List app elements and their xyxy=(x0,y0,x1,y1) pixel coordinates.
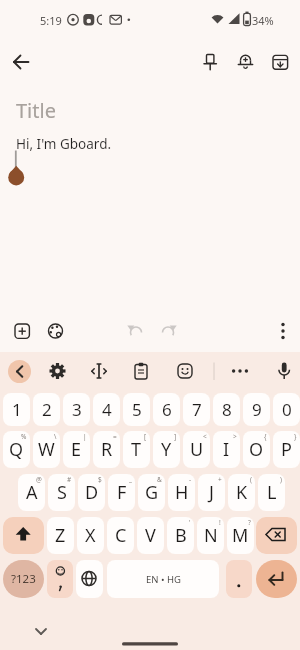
staticText: 6 xyxy=(162,398,172,421)
staticText: C xyxy=(115,523,127,548)
button[interactable]: L xyxy=(258,474,285,511)
button[interactable] xyxy=(226,357,254,385)
button[interactable]: 9 xyxy=(243,393,270,426)
staticText: [ xyxy=(144,432,147,441)
staticText: J xyxy=(209,480,214,505)
button[interactable] xyxy=(29,620,53,642)
button[interactable]: W xyxy=(33,431,60,468)
staticText: Z xyxy=(55,523,66,548)
button[interactable] xyxy=(8,48,36,76)
staticText: | xyxy=(83,432,87,441)
button[interactable]: X xyxy=(77,517,104,554)
button[interactable]: K xyxy=(228,474,255,511)
button[interactable] xyxy=(268,48,294,76)
button[interactable] xyxy=(154,317,182,345)
button[interactable] xyxy=(8,360,31,383)
button[interactable]: 7 xyxy=(183,393,210,426)
button[interactable]: Z xyxy=(47,517,74,554)
staticText: ! xyxy=(219,518,221,527)
staticText: ) xyxy=(280,475,282,484)
staticText: V xyxy=(145,523,156,548)
button[interactable]: G xyxy=(138,474,165,511)
staticText: 5 xyxy=(132,398,142,421)
button[interactable] xyxy=(127,357,155,385)
staticText: > xyxy=(233,432,237,441)
button[interactable]: S xyxy=(48,474,75,511)
button[interactable] xyxy=(85,357,113,385)
button[interactable] xyxy=(3,517,44,554)
button[interactable] xyxy=(76,560,103,598)
staticText: _ xyxy=(129,475,132,484)
button[interactable] xyxy=(198,48,224,76)
staticText: 0 xyxy=(282,398,292,421)
button[interactable]: Y xyxy=(153,431,180,468)
button[interactable]: O xyxy=(243,431,270,468)
button[interactable] xyxy=(43,357,71,385)
button[interactable]: 4 xyxy=(93,393,120,426)
button[interactable]: M xyxy=(227,517,254,554)
staticText: N xyxy=(204,523,218,548)
staticText: < xyxy=(203,432,207,441)
staticText: P xyxy=(281,437,292,462)
button[interactable]: V xyxy=(137,517,164,554)
button[interactable]: 0 xyxy=(273,393,300,426)
button[interactable]: Q xyxy=(3,431,30,468)
staticText: } xyxy=(294,432,297,441)
staticText: - xyxy=(189,475,192,484)
staticText: B xyxy=(175,523,187,548)
button[interactable] xyxy=(121,317,149,345)
staticText: H xyxy=(175,480,189,505)
staticText: L xyxy=(267,480,277,505)
button[interactable]: B xyxy=(167,517,194,554)
button[interactable] xyxy=(232,48,258,76)
staticText: 9 xyxy=(252,398,262,421)
button[interactable]: F xyxy=(108,474,135,511)
button[interactable] xyxy=(171,357,199,385)
staticText: ?123 xyxy=(11,571,36,587)
staticText: T xyxy=(131,437,142,462)
button[interactable]: 6 xyxy=(153,393,180,426)
button[interactable]: EN • HG xyxy=(107,560,219,598)
staticText: W xyxy=(38,437,55,462)
button[interactable] xyxy=(8,317,36,345)
button[interactable]: P xyxy=(273,431,300,468)
button[interactable]: U xyxy=(183,431,210,468)
button[interactable]: 5 xyxy=(123,393,150,426)
button[interactable]: 1 xyxy=(3,393,30,426)
staticText: X xyxy=(85,523,96,548)
staticText: ? xyxy=(248,518,251,527)
button[interactable] xyxy=(270,357,298,385)
button[interactable]: R xyxy=(93,431,120,468)
button[interactable]: I xyxy=(213,431,240,468)
button[interactable] xyxy=(256,517,297,554)
button[interactable]: ?123 xyxy=(3,560,44,598)
staticText: = xyxy=(113,432,117,441)
button[interactable]: H xyxy=(168,474,195,511)
staticText: @ xyxy=(36,475,42,484)
staticText: 7 xyxy=(192,398,202,421)
staticText: 3 xyxy=(72,398,82,421)
staticText: ] xyxy=(174,432,177,441)
button[interactable]: 3 xyxy=(63,393,90,426)
staticText: Q xyxy=(9,437,24,462)
button[interactable]: T xyxy=(123,431,150,468)
staticText: 1 xyxy=(12,398,22,421)
button[interactable] xyxy=(256,560,297,598)
button[interactable]: J xyxy=(198,474,225,511)
button[interactable] xyxy=(269,317,297,345)
button[interactable] xyxy=(41,317,69,345)
staticText: $ xyxy=(98,475,102,484)
button[interactable]: D xyxy=(78,474,105,511)
staticText: EN • HG xyxy=(146,573,181,586)
button[interactable]: E xyxy=(63,431,90,468)
button[interactable]: N xyxy=(197,517,224,554)
button[interactable]: 8 xyxy=(213,393,240,426)
staticText: E xyxy=(71,437,82,462)
staticText: ( xyxy=(250,475,252,484)
button[interactable] xyxy=(226,560,252,598)
staticText: S xyxy=(57,480,67,505)
button[interactable]: 2 xyxy=(33,393,60,426)
button[interactable] xyxy=(47,560,73,598)
button[interactable]: A xyxy=(18,474,45,511)
button[interactable]: C xyxy=(107,517,134,554)
